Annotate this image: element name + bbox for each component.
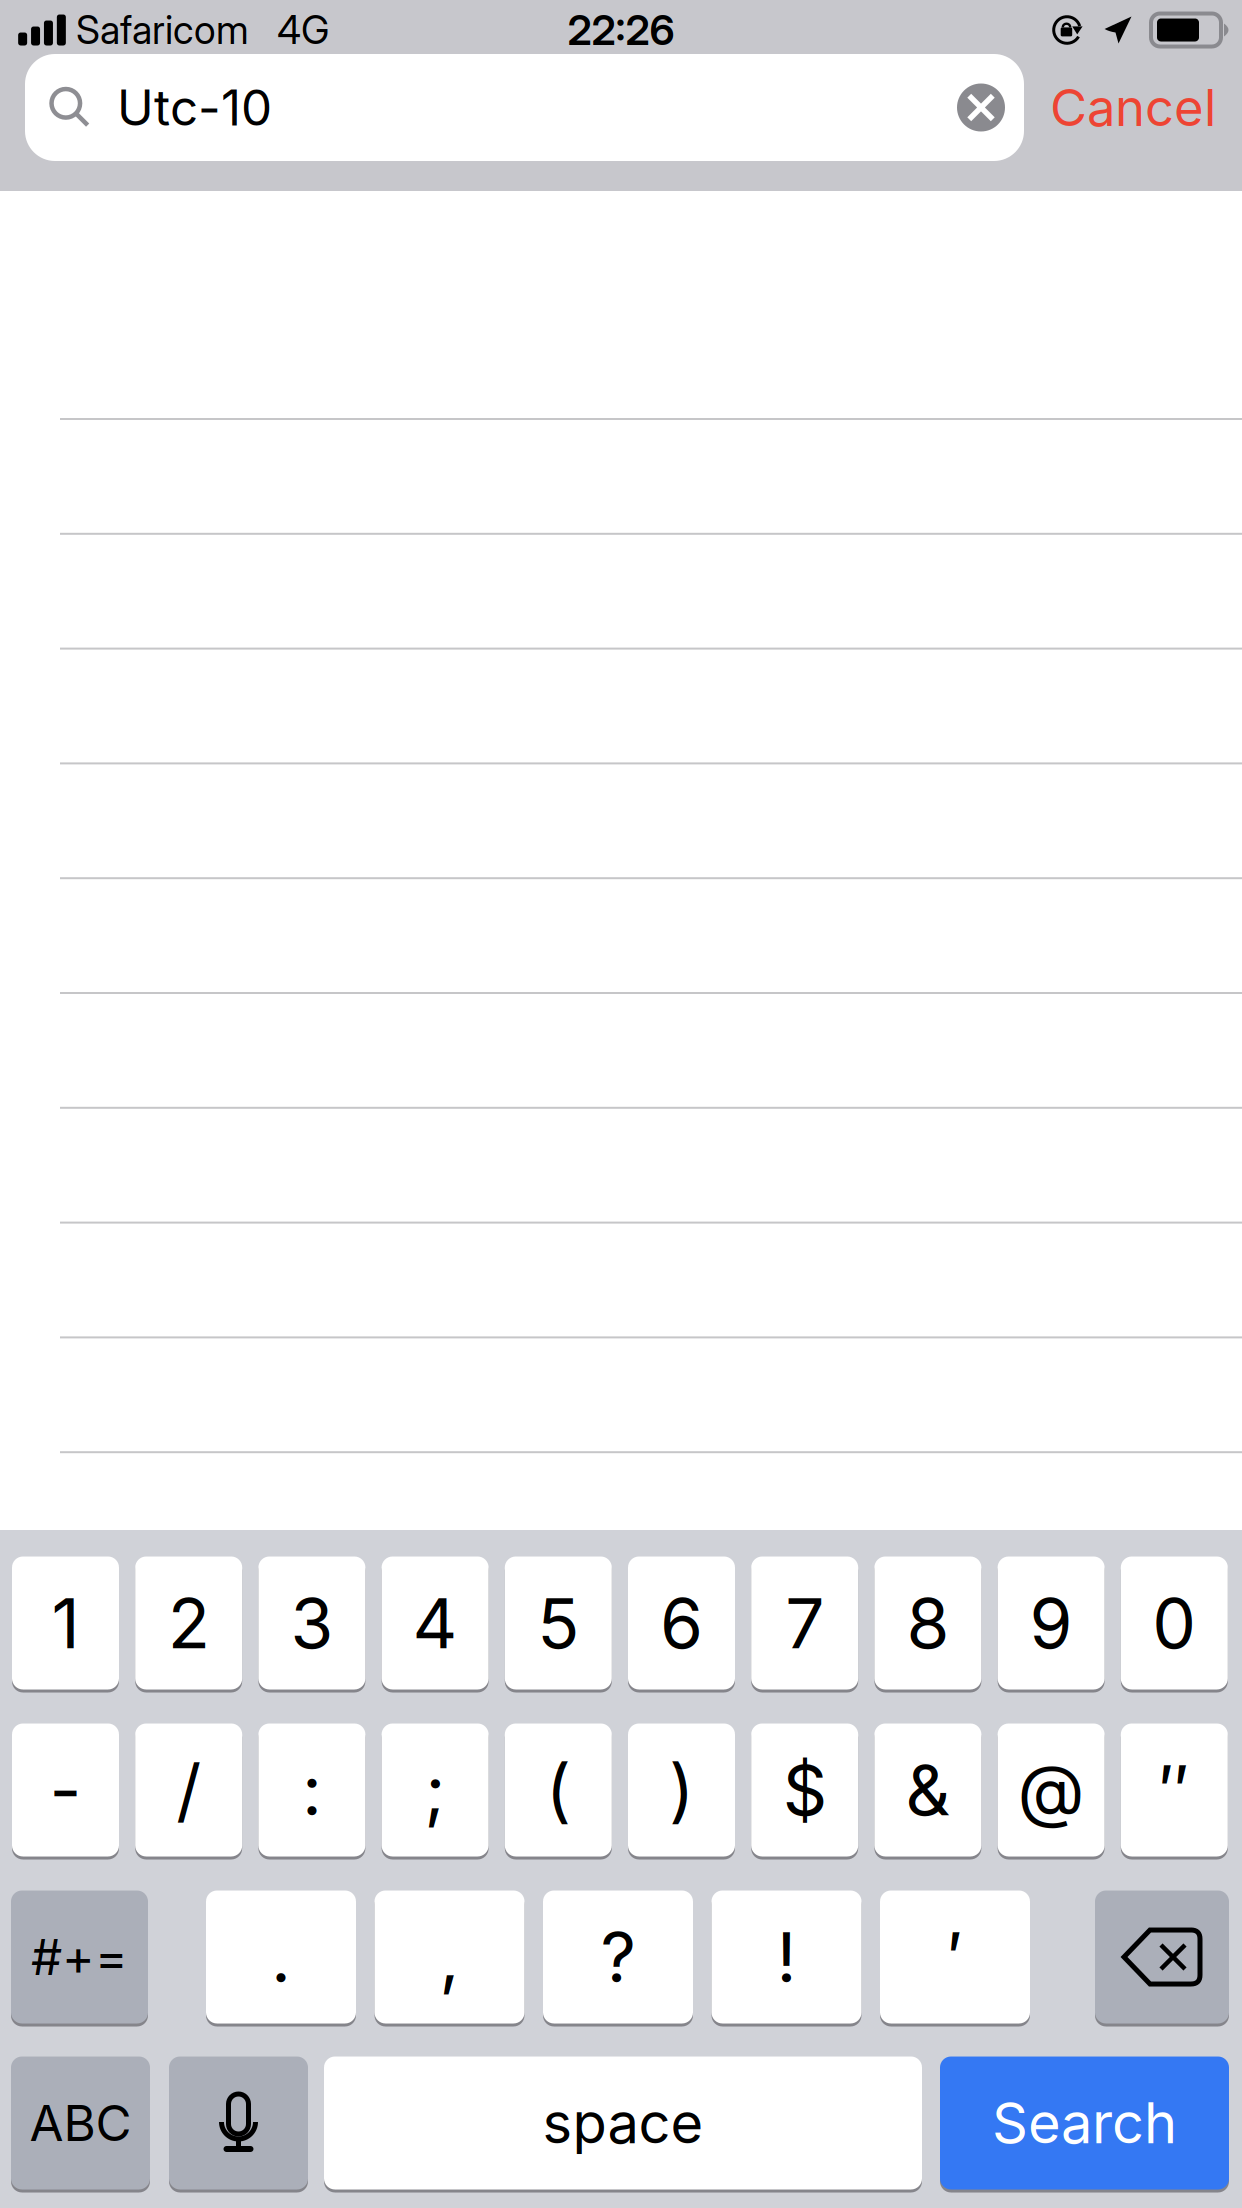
staticText: ( (546, 1748, 571, 1832)
staticText: 2 (168, 1581, 210, 1665)
staticText: . (271, 1915, 291, 1999)
button[interactable]: 8 (874, 1555, 981, 1691)
button[interactable]: 2 (135, 1555, 242, 1691)
staticText: 1 (51, 1581, 79, 1665)
button[interactable]: Search (940, 2055, 1229, 2191)
button[interactable]: ? (543, 1889, 693, 2025)
button[interactable]: 3 (258, 1555, 365, 1691)
staticText: Utc-10 (117, 78, 272, 137)
button[interactable]: #+= (11, 1889, 148, 2025)
staticText: 22:26 (567, 5, 674, 55)
staticText: Search (992, 2089, 1177, 2157)
button[interactable]: ′ (880, 1889, 1030, 2025)
button[interactable]: ( (505, 1722, 612, 1858)
staticText: 4G (277, 7, 329, 53)
staticText: $ (783, 1748, 827, 1832)
button[interactable]: 5 (505, 1555, 612, 1691)
button[interactable]: : (258, 1722, 365, 1858)
button[interactable]: 4 (382, 1555, 489, 1691)
button[interactable]: Utc-10 (25, 54, 1024, 161)
staticText: 9 (1030, 1581, 1073, 1665)
button[interactable]: , (374, 1889, 524, 2025)
staticText: 7 (785, 1581, 824, 1665)
staticText: 8 (906, 1581, 949, 1665)
staticText: ; (425, 1748, 446, 1832)
staticText: Safaricom (76, 7, 249, 53)
button[interactable]: space (324, 2055, 922, 2191)
staticText: 6 (660, 1581, 703, 1665)
button[interactable]: 7 (751, 1555, 858, 1691)
staticText: - (49, 1748, 81, 1832)
staticText: @ (1018, 1748, 1085, 1832)
button[interactable]: $ (751, 1722, 858, 1858)
button[interactable]: Dictation (169, 2055, 308, 2191)
staticText: 5 (537, 1581, 579, 1665)
staticText: & (905, 1748, 950, 1832)
button[interactable]: ; (382, 1722, 489, 1858)
button[interactable]: 0 (1121, 1555, 1228, 1691)
button[interactable]: - (12, 1722, 119, 1858)
staticText: : (302, 1748, 322, 1832)
button[interactable]: 1 (12, 1555, 119, 1691)
button[interactable]: @ (998, 1722, 1105, 1858)
button[interactable]: 9 (998, 1555, 1105, 1691)
button[interactable]: . (206, 1889, 356, 2025)
staticText: ! (776, 1915, 796, 1999)
staticText: ABC (29, 2093, 131, 2153)
button[interactable]: / (135, 1722, 242, 1858)
button[interactable]: ) (628, 1722, 735, 1858)
button[interactable]: Delete (1095, 1889, 1229, 2025)
button[interactable]: 6 (628, 1555, 735, 1691)
button[interactable]: ABC (11, 2055, 150, 2191)
staticText: ″ (1159, 1748, 1190, 1832)
staticText: 3 (290, 1581, 333, 1665)
staticText: Cancel (1050, 77, 1216, 138)
staticText: , (439, 1915, 459, 1999)
staticText: ) (669, 1748, 694, 1832)
staticText: ? (600, 1915, 635, 1999)
button[interactable]: & (874, 1722, 981, 1858)
button[interactable]: Cancel (1024, 54, 1242, 161)
staticText: 4 (413, 1581, 458, 1665)
button[interactable]: ″ (1121, 1722, 1228, 1858)
staticText: 0 (1152, 1581, 1196, 1665)
staticText: / (176, 1748, 201, 1832)
button[interactable]: ! (711, 1889, 861, 2025)
staticText: ′ (947, 1915, 962, 1999)
staticText: #+= (31, 1927, 128, 1987)
staticText: space (542, 2089, 703, 2157)
